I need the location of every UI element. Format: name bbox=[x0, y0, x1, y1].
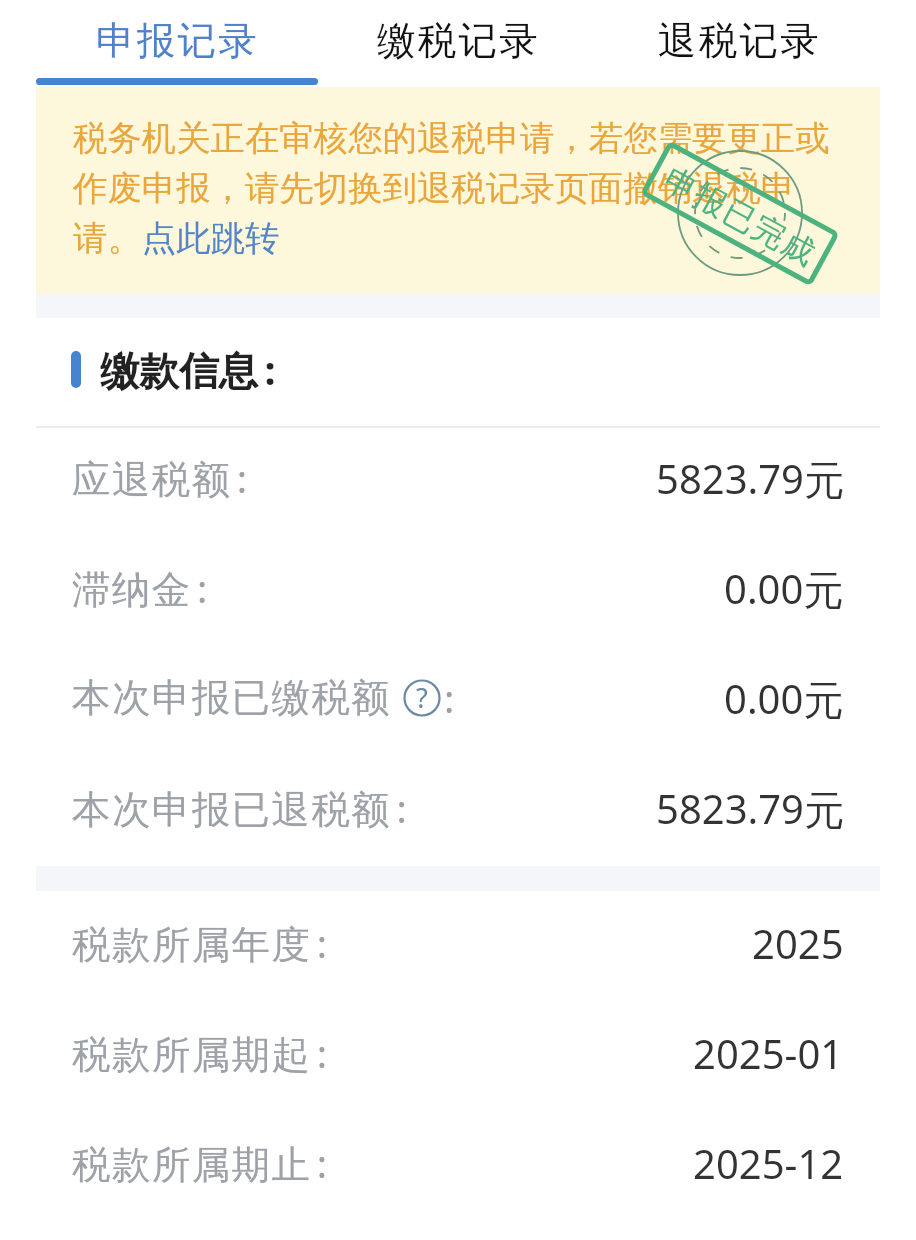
staticText: 2025-12 bbox=[693, 1136, 844, 1190]
button[interactable]: 帮助说明 bbox=[403, 679, 441, 717]
button[interactable]: 本次申报已退税额 : bbox=[72, 753, 844, 863]
staticText: 申报已完成 bbox=[657, 159, 824, 274]
staticText: 退税记录 bbox=[658, 17, 821, 66]
button[interactable]: 税款所属期起 : bbox=[72, 998, 844, 1108]
staticText: ? bbox=[416, 679, 428, 716]
staticText: 申报记录 bbox=[96, 17, 259, 66]
button[interactable]: 滞纳金 : bbox=[72, 533, 844, 643]
staticText: 税务机关正在审核您的退税申请，若您需要更正或作废申报，请先切换到退税记录页面撤销… bbox=[73, 117, 835, 261]
button[interactable]: 申报记录 bbox=[36, 0, 318, 78]
button[interactable]: 点此跳转 bbox=[145, 214, 291, 262]
staticText: 税款所属期起 : bbox=[72, 1027, 329, 1080]
staticText: 2025-01 bbox=[693, 1026, 844, 1080]
staticText: 应退税额 : bbox=[72, 452, 249, 505]
staticText: 税款所属年度 : bbox=[72, 917, 329, 970]
staticText: 滞纳金 : bbox=[72, 562, 209, 615]
staticText: 0.00元 bbox=[724, 671, 844, 726]
button[interactable]: 本次申报已缴税额 bbox=[72, 643, 844, 753]
button[interactable]: 税款所属期止 : bbox=[72, 1108, 844, 1218]
staticText: 0.00元 bbox=[724, 561, 844, 616]
button[interactable]: 缴税记录 bbox=[318, 0, 599, 78]
staticText: 本次申报已缴税额 bbox=[72, 674, 392, 723]
staticText: 2025 bbox=[752, 916, 844, 970]
staticText: 5823.79元 bbox=[656, 451, 844, 506]
button[interactable]: 退税记录 bbox=[599, 0, 880, 78]
staticText: 本次申报已退税额 : bbox=[72, 782, 409, 835]
staticText: : bbox=[444, 672, 455, 724]
button[interactable]: 税款所属年度 : bbox=[72, 888, 844, 998]
staticText: 5823.79元 bbox=[656, 781, 844, 836]
button[interactable]: 应退税额 : bbox=[72, 423, 844, 533]
staticText: 缴款信息 : bbox=[100, 343, 276, 397]
staticText: 缴税记录 bbox=[377, 17, 540, 66]
staticText: 税款所属期止 : bbox=[72, 1137, 329, 1190]
